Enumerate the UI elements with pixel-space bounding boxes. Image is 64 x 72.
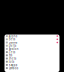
- staticText: Kappa: [9, 63, 17, 67]
- staticText: Gamma: [9, 41, 17, 44]
- button[interactable]: Eta: [4, 54, 59, 57]
- button[interactable]: Delta: [4, 44, 59, 47]
- button[interactable]: Zeta: [4, 50, 59, 54]
- staticText: Eta: [9, 53, 12, 57]
- staticText: Beta: [9, 37, 15, 41]
- button[interactable]: Gamma: [4, 41, 59, 44]
- button[interactable]: Beta: [4, 38, 59, 41]
- button[interactable]: Iota: [4, 60, 59, 63]
- staticText: Iota: [9, 60, 14, 63]
- staticText: Zeta: [9, 50, 15, 54]
- staticText: Lambda: [9, 66, 18, 70]
- button[interactable]: Alpha: [4, 34, 59, 38]
- button[interactable]: Lambda: [4, 66, 59, 70]
- button[interactable]: Epsilon: [4, 47, 59, 50]
- staticText: Alpha: [9, 34, 17, 38]
- staticText: Theta: [9, 57, 16, 60]
- button[interactable]: Theta: [4, 57, 59, 60]
- staticText: Delta: [9, 44, 16, 47]
- staticText: Epsilon: [9, 47, 19, 51]
- button[interactable]: Kappa: [4, 63, 59, 66]
